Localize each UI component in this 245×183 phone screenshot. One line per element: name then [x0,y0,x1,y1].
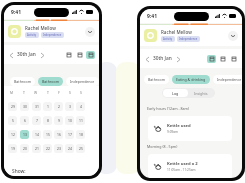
button[interactable]: 30 [20,102,29,111]
staticText: Insights [194,91,208,96]
staticText: 13 [23,132,27,137]
staticText: 22 [46,146,50,151]
staticText: 1 [47,104,49,109]
staticText: 11 [79,118,83,123]
staticText: 11:05am - 11:25am [167,168,196,172]
button[interactable]: Kettle used x 2 [148,154,232,178]
button[interactable]: Eating & drinking [172,75,210,84]
staticText: 8 [47,118,49,123]
button[interactable]: 23 [54,144,63,153]
button[interactable]: 1 [43,102,52,111]
button[interactable]: 11 [76,116,85,125]
button[interactable]: Independence [213,75,242,84]
button[interactable]: 24 [65,144,74,153]
button[interactable]: 8 [43,116,52,125]
button[interactable]: Expand profile [85,27,95,37]
button[interactable]: Chart view [75,51,84,59]
staticText: 30th Jan [153,55,172,62]
button[interactable]: Log [163,89,188,97]
button[interactable]: 3 [65,102,74,111]
staticText: Kettle used x 2 [167,161,198,167]
staticText: 9 [58,118,60,123]
staticText: 14 [35,132,39,137]
button[interactable]: 22 [43,144,52,153]
staticText: 3 [69,104,71,109]
staticText: 30th Jan [17,51,36,58]
staticText: Rachel Mellow [25,25,56,31]
button[interactable]: 17 [65,130,74,139]
button[interactable]: Previous day [8,51,14,59]
button[interactable]: Kettle used [148,116,232,141]
staticText: F [58,90,60,95]
button[interactable]: Insights [188,89,214,97]
staticText: Bathroom [14,79,31,84]
button[interactable]: 14 [32,130,41,139]
staticText: M [10,90,14,95]
staticText: Independence [43,33,62,37]
staticText: Independence [217,77,242,82]
button[interactable]: Next day [175,55,181,63]
button[interactable]: Calendar view [207,55,216,63]
staticText: Morning (8 - 5pm) [147,144,178,149]
staticText: 24 [68,146,72,151]
staticText: 15 [46,132,50,137]
button[interactable]: Bathroom [10,77,35,86]
staticText: 4 [80,104,82,109]
button[interactable]: 16 [54,130,63,139]
staticText: 6 [24,118,26,123]
staticText: 10 [68,118,72,123]
button[interactable]: Expand profile [228,31,238,41]
staticText: 30 [23,104,27,109]
button[interactable]: Calendar view [86,51,95,59]
staticText: T [47,90,49,95]
staticText: 17 [68,132,72,137]
button[interactable]: 29 [8,102,17,111]
staticText: Early hours (12am - 8am) [147,106,190,111]
button[interactable]: 21 [32,144,41,153]
staticText: 31 [35,104,39,109]
staticText: Bathroom [42,79,59,84]
staticText: 9:41 [11,9,21,16]
button[interactable]: Previous day [144,55,150,63]
button[interactable]: Independence [66,77,99,86]
button[interactable]: 5 [8,116,17,125]
button[interactable]: List view [64,51,73,59]
button[interactable]: 19 [8,144,17,153]
button[interactable]: 9 [54,116,63,125]
button[interactable]: List view [218,55,227,63]
staticText: 5 [12,118,14,123]
button[interactable]: 25 [76,144,85,153]
button[interactable]: 15 [43,130,52,139]
staticText: Rachel Mellow [161,29,192,35]
button[interactable]: Next day [39,51,45,59]
staticText: Log [172,91,179,96]
staticText: 7 [36,118,38,123]
staticText: Activity [163,37,173,41]
staticText: 2 [58,104,60,109]
button[interactable]: 4 [76,102,85,111]
button[interactable]: Bathroom [144,75,169,84]
staticText: 16 [57,132,61,137]
button[interactable]: 10 [65,116,74,125]
button[interactable]: Bathroom [38,77,63,86]
button[interactable]: 13 [20,130,29,139]
staticText: 9:41 [147,13,157,20]
staticText: 23 [57,146,61,151]
button[interactable]: 20 [20,144,29,153]
staticText: Activity [27,33,37,37]
staticText: W [34,90,38,95]
button[interactable]: 2 [54,102,63,111]
staticText: Show: [12,168,26,175]
button[interactable]: 18 [76,130,85,139]
button[interactable]: 6 [20,116,29,125]
staticText: Independence [179,37,198,41]
button[interactable]: 12 [8,130,17,139]
staticText: 12 [11,132,15,137]
button[interactable]: 31 [32,102,41,111]
staticText: 9:09am [167,130,179,134]
button[interactable]: 7 [32,116,41,125]
staticText: Independence [70,79,95,84]
staticText: S [69,90,71,95]
button[interactable]: Chart view [229,55,238,63]
staticText: Eating & drinking [176,77,206,82]
